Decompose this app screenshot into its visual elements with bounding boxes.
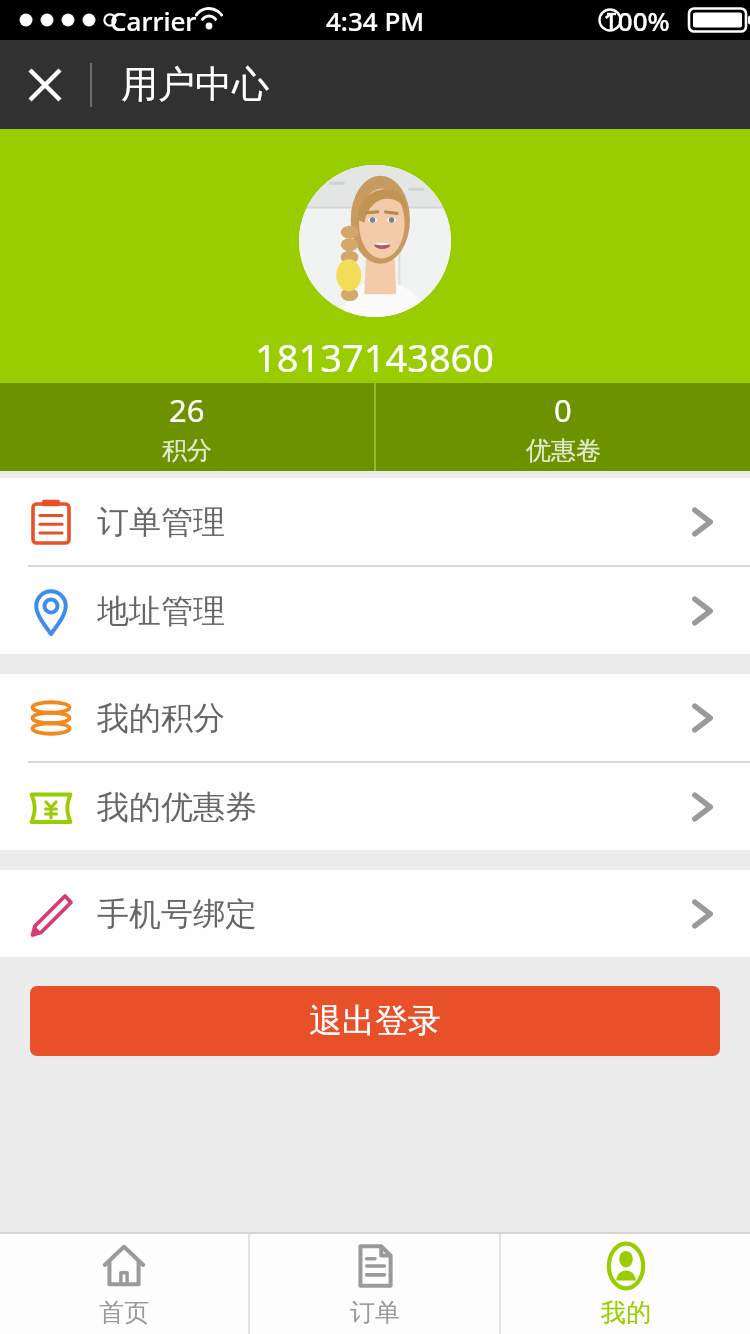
- staticText: 首页: [99, 1297, 149, 1328]
- button[interactable]: 我的: [501, 1234, 750, 1334]
- staticText: 优惠卷: [526, 435, 601, 466]
- staticText: 我的: [601, 1297, 651, 1328]
- staticText: 手机号绑定: [97, 894, 257, 934]
- staticText: 退出登录: [309, 1000, 441, 1042]
- button[interactable]: 我的积分: [0, 674, 750, 763]
- staticText: 4:34 PM: [326, 3, 425, 38]
- staticText: 18137143860: [255, 331, 495, 383]
- button[interactable]: 26: [0, 383, 374, 471]
- button[interactable]: 订单: [250, 1234, 499, 1334]
- button[interactable]: 地址管理: [0, 567, 750, 654]
- staticText: 0: [554, 389, 572, 431]
- button[interactable]: 手机号绑定: [0, 870, 750, 957]
- button[interactable]: 我的优惠券: [0, 763, 750, 850]
- staticText: 订单管理: [97, 502, 225, 542]
- staticText: 我的优惠券: [97, 787, 257, 827]
- staticText: 100%: [603, 3, 670, 38]
- staticText: 我的积分: [97, 698, 225, 738]
- staticText: 地址管理: [97, 591, 225, 631]
- staticText: 订单: [350, 1297, 400, 1328]
- staticText: 用户中心: [121, 61, 269, 108]
- button[interactable]: 首页: [0, 1234, 248, 1334]
- button[interactable]: 退出登录: [30, 986, 720, 1056]
- staticText: 26: [169, 389, 205, 431]
- button[interactable]: 订单管理: [0, 478, 750, 567]
- staticText: Carrier: [110, 3, 197, 38]
- button[interactable]: Close: [14, 54, 76, 116]
- staticText: 积分: [162, 435, 212, 466]
- button[interactable]: Profile photo: [299, 165, 451, 317]
- button[interactable]: 0: [376, 383, 750, 471]
